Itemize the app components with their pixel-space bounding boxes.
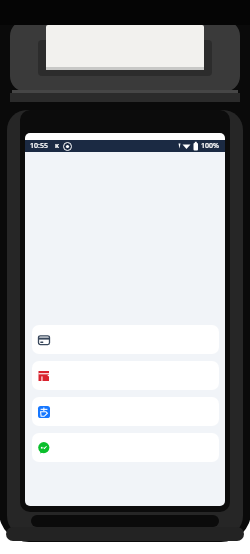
button[interactable] [32, 397, 219, 426]
button[interactable] [32, 361, 219, 390]
staticText: 10:55 [30, 141, 48, 151]
staticText: K [55, 142, 59, 150]
button[interactable] [32, 433, 219, 462]
staticText: 100% [201, 141, 219, 151]
button[interactable] [32, 325, 219, 354]
